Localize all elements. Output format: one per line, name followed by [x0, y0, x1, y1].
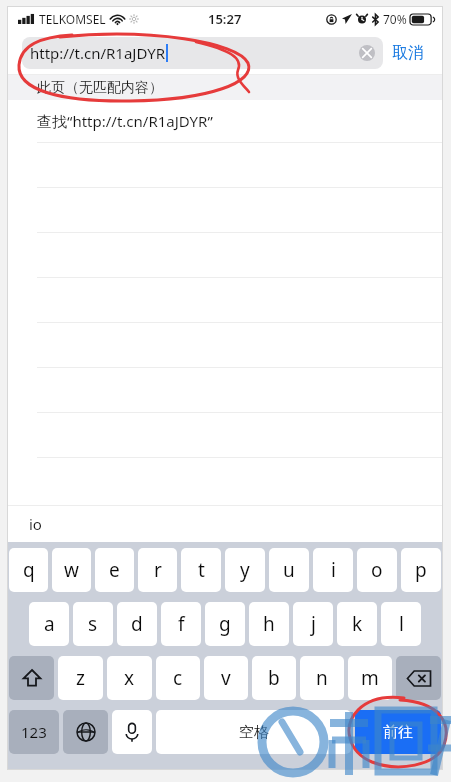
- staticText: y: [240, 557, 250, 583]
- button[interactable]: c: [156, 656, 200, 700]
- button[interactable]: b: [252, 656, 296, 700]
- staticText: io: [29, 514, 42, 534]
- button[interactable]: f: [161, 602, 201, 646]
- button[interactable]: g: [205, 602, 245, 646]
- staticText: 此页（无匹配内容）: [37, 79, 163, 97]
- staticText: v: [221, 665, 231, 691]
- button[interactable]: Clear text: [359, 45, 375, 61]
- staticText: h: [263, 611, 275, 637]
- button[interactable]: z: [58, 656, 103, 700]
- staticText: n: [316, 665, 328, 691]
- staticText: i: [331, 557, 336, 583]
- staticText: c: [173, 665, 183, 691]
- button[interactable]: q: [9, 548, 48, 592]
- button[interactable]: r: [138, 548, 177, 592]
- staticText: m: [361, 665, 379, 691]
- button[interactable]: 前往: [355, 710, 441, 754]
- button[interactable]: s: [73, 602, 113, 646]
- button[interactable]: u: [269, 548, 309, 592]
- button[interactable]: h: [249, 602, 289, 646]
- staticText: g: [219, 611, 231, 637]
- staticText: d: [131, 611, 143, 637]
- button[interactable]: a: [29, 602, 69, 646]
- staticText: 前往: [383, 723, 413, 742]
- staticText: 取消: [392, 43, 424, 63]
- staticText: e: [109, 557, 120, 583]
- staticText: o: [371, 557, 383, 583]
- button[interactable]: e: [95, 548, 134, 592]
- button[interactable]: 空格: [156, 710, 351, 754]
- staticText: k: [352, 611, 363, 637]
- button[interactable]: x: [107, 656, 152, 700]
- button[interactable]: 查找“http://t.cn/R1aJDYR”: [7, 100, 443, 142]
- button[interactable]: j: [293, 602, 333, 646]
- button[interactable]: Shift: [9, 656, 54, 700]
- staticText: TELKOMSEL: [39, 11, 106, 27]
- button[interactable]: l: [381, 602, 421, 646]
- button[interactable]: p: [401, 548, 441, 592]
- staticText: r: [154, 557, 162, 583]
- staticText: a: [44, 611, 55, 637]
- staticText: w: [64, 557, 79, 583]
- staticText: q: [23, 557, 35, 583]
- staticText: j: [311, 611, 316, 637]
- button[interactable]: Backspace: [396, 656, 441, 700]
- staticText: z: [76, 665, 85, 691]
- staticText: t: [198, 557, 205, 583]
- staticText: 123: [21, 722, 47, 742]
- button[interactable]: Change keyboard: [63, 710, 108, 754]
- button[interactable]: w: [52, 548, 91, 592]
- staticText: l: [399, 611, 404, 637]
- staticText: b: [268, 665, 280, 691]
- button[interactable]: v: [204, 656, 248, 700]
- staticText: 15:27: [208, 10, 242, 28]
- button[interactable]: y: [225, 548, 265, 592]
- button[interactable]: Numbers: [9, 710, 59, 754]
- button[interactable]: http://t.cn/R1aJDYR: [22, 37, 383, 69]
- staticText: 查找“http://t.cn/R1aJDYR”: [37, 111, 213, 131]
- staticText: p: [415, 557, 427, 583]
- button[interactable]: 取消: [383, 39, 433, 67]
- staticText: f: [178, 611, 185, 637]
- button[interactable]: t: [181, 548, 221, 592]
- button[interactable]: m: [348, 656, 392, 700]
- button[interactable]: n: [300, 656, 344, 700]
- staticText: 70%: [383, 11, 407, 27]
- staticText: http://t.cn/R1aJDYR: [30, 43, 166, 63]
- button[interactable]: o: [357, 548, 397, 592]
- button[interactable]: Dictation: [112, 710, 152, 754]
- button[interactable]: d: [117, 602, 157, 646]
- button[interactable]: k: [337, 602, 377, 646]
- button[interactable]: i: [313, 548, 353, 592]
- staticText: x: [124, 665, 135, 691]
- staticText: s: [88, 611, 98, 637]
- staticText: u: [283, 557, 295, 583]
- staticText: 空格: [239, 723, 269, 742]
